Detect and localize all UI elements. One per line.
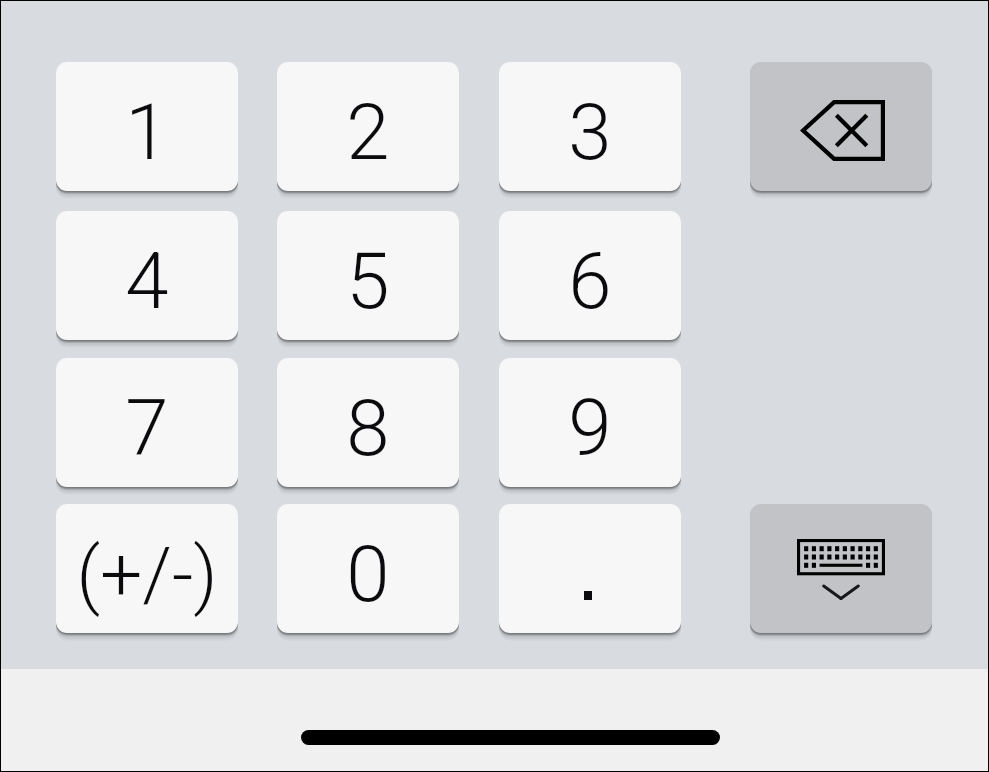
button[interactable]: Backspace	[750, 62, 932, 191]
button[interactable]: 6	[499, 211, 681, 340]
button[interactable]: Hide keyboard	[750, 504, 932, 633]
button[interactable]: 1	[56, 62, 238, 191]
button[interactable]: 4	[56, 211, 238, 340]
staticText: 9	[568, 383, 612, 474]
staticText: 6	[568, 236, 612, 327]
staticText: 1	[125, 87, 169, 178]
staticText: 3	[568, 87, 612, 178]
staticText: (+/-)	[76, 531, 218, 618]
staticText: 7	[125, 383, 169, 474]
button[interactable]: (+/-)	[56, 504, 238, 633]
button[interactable]: 5	[277, 211, 459, 340]
staticText: 0	[346, 529, 390, 620]
button[interactable]: 2	[277, 62, 459, 191]
button[interactable]: 3	[499, 62, 681, 191]
staticText: 2	[346, 87, 390, 178]
button[interactable]: 7	[56, 358, 238, 487]
button[interactable]	[499, 504, 681, 633]
staticText: 4	[125, 236, 169, 327]
button[interactable]: 8	[277, 358, 459, 487]
button[interactable]: 9	[499, 358, 681, 487]
staticText: 5	[346, 236, 390, 327]
staticText: 8	[346, 383, 390, 474]
button[interactable]: 0	[277, 504, 459, 633]
